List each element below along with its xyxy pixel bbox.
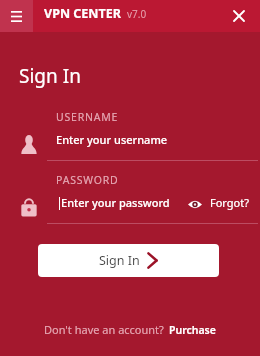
button[interactable]: PASSWORD <box>56 173 249 224</box>
button[interactable]: Open navigation menu <box>0 0 33 32</box>
staticText: Enter your password <box>61 195 170 210</box>
button[interactable]: USERNAME <box>56 110 249 161</box>
button[interactable]: Close <box>223 0 255 32</box>
staticText: Forgot? <box>210 195 249 210</box>
staticText: USERNAME <box>56 110 119 124</box>
staticText: PASSWORD <box>56 173 119 187</box>
button[interactable]: Forgot? <box>182 195 249 210</box>
staticText: Sign In <box>19 63 81 89</box>
staticText: Don't have an account? <box>44 322 164 337</box>
staticText: Purchase <box>169 323 216 337</box>
staticText: VPN CENTER <box>44 5 121 22</box>
staticText: v7.0 <box>127 7 147 21</box>
button[interactable]: Purchase <box>169 323 216 337</box>
button[interactable]: Sign In <box>38 244 219 277</box>
staticText: Enter your username <box>56 132 168 147</box>
staticText: Sign In <box>99 252 140 269</box>
